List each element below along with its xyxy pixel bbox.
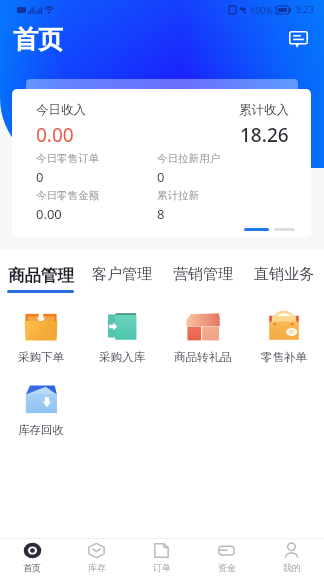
staticText: 资金 [218,562,236,573]
staticText: 零售补单 [261,350,307,364]
staticText: 库存回收 [18,423,64,437]
button[interactable]: 商品转礼品 [162,310,243,364]
staticText: 今日收入 [36,102,86,118]
staticText: 今日拉新用户 [157,152,220,165]
staticText: 0 [36,168,44,186]
staticText: 今日零售金额 [36,189,99,202]
button[interactable]: 客户管理 [81,249,162,294]
staticText: 订单 [153,562,171,573]
staticText: 我的 [283,562,301,573]
staticText: 0.00 [36,205,62,223]
staticText: 直销业务 [254,265,314,284]
button[interactable]: 采购下单 [0,310,81,364]
button[interactable]: 库存 [64,539,129,576]
staticText: 8 [157,205,165,223]
staticText: 今日零售订单 [36,152,99,165]
staticText: 3:23 [295,3,314,16]
staticText: 0.00 [36,122,74,148]
button[interactable]: 资金 [194,539,259,576]
staticText: 首页 [23,562,41,573]
button[interactable]: 库存回收 [0,383,81,437]
staticText: 首页 [13,24,63,54]
button[interactable]: 首页 [0,539,64,576]
button[interactable]: 直销业务 [243,249,324,294]
button[interactable]: 商品管理 [0,249,81,294]
button[interactable]: Messages [283,24,313,54]
staticText: 100% [250,4,273,16]
staticText: 0 [157,168,165,186]
button[interactable]: 我的 [259,539,324,576]
staticText: 18.26 [240,122,289,148]
staticText: 客户管理 [92,265,152,284]
staticText: 商品管理 [8,265,74,286]
button[interactable]: 营销管理 [162,249,243,294]
staticText: 采购下单 [18,350,64,364]
staticText: 营销管理 [173,265,233,284]
staticText: 累计拉新 [157,189,199,202]
staticText: 库存 [88,562,106,573]
button[interactable]: 零售补单 [243,310,324,364]
button[interactable]: 采购入库 [81,310,162,364]
staticText: 累计收入 [239,102,289,118]
staticText: 商品转礼品 [174,350,232,364]
button[interactable]: 订单 [129,539,194,576]
staticText: 采购入库 [99,350,145,364]
